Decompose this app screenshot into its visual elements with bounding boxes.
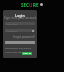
button[interactable]: Forgot password? [13,35,35,39]
staticText: RE [33,2,39,7]
staticText: SEC [21,2,29,7]
staticText: Need help signing in [5,50,30,53]
staticText: Password [6,29,17,32]
button[interactable]: SIGN IN [22,52,32,55]
button[interactable]: SEC [0,2,64,7]
staticText: Remember this device [5,46,32,49]
button[interactable]: Password [5,29,35,32]
staticText: SIGN IN [23,52,32,55]
staticText: U [29,2,33,7]
staticText: Sign in to your account [4,16,37,20]
staticText: Username [6,22,18,25]
other: Account [40,3,43,6]
staticText: Login [15,13,25,18]
button[interactable]: Username [5,22,35,25]
